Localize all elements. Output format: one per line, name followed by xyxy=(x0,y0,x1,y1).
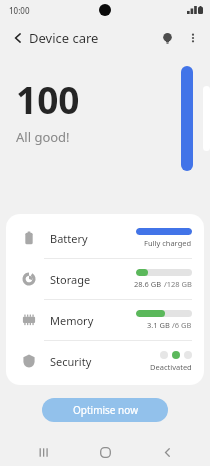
staticText: 3.1 GB xyxy=(147,320,172,330)
button[interactable]: Storage xyxy=(6,259,204,299)
button[interactable]: Tips xyxy=(154,25,180,51)
button[interactable]: Recents xyxy=(26,438,62,466)
staticText: 10:00 xyxy=(9,5,30,16)
staticText: /6 GB xyxy=(172,320,192,330)
staticText: Fully charged xyxy=(144,238,192,248)
staticText: Storage xyxy=(50,272,91,287)
button[interactable]: Home xyxy=(87,438,123,466)
staticText: /128 GB xyxy=(164,279,192,289)
staticText: 28.6 GB xyxy=(134,279,164,289)
staticText: Battery xyxy=(50,231,88,246)
button[interactable]: Security xyxy=(6,341,204,381)
button[interactable]: Memory xyxy=(6,300,204,340)
staticText: 100 xyxy=(16,74,80,124)
staticText: Device care xyxy=(29,29,99,47)
button[interactable]: Battery xyxy=(6,218,204,258)
button[interactable]: Optimise now xyxy=(42,398,168,422)
staticText: All good! xyxy=(16,128,70,146)
button[interactable]: More options xyxy=(180,25,206,51)
button[interactable]: Back xyxy=(4,24,32,52)
button[interactable]: Back xyxy=(149,438,185,466)
staticText: Optimise now xyxy=(73,403,138,417)
staticText: Deactivated xyxy=(150,362,192,372)
staticText: Memory xyxy=(50,313,94,328)
staticText: Security xyxy=(50,354,92,369)
